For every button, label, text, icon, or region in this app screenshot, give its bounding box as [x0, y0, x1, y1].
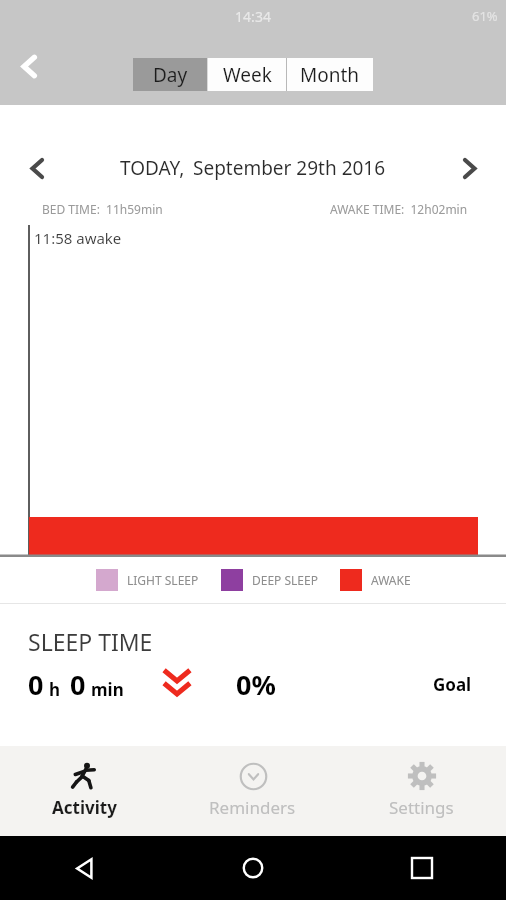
button[interactable]: Home [168, 836, 337, 900]
staticText: AWAKE TIME: 12h02min [330, 201, 468, 217]
staticText: AWAKE [371, 572, 411, 588]
staticText: SLEEP TIME [28, 626, 153, 657]
staticText: September 29th 2016 [193, 155, 386, 181]
button[interactable]: Back [0, 37, 58, 95]
button[interactable]: Previous day [0, 145, 74, 191]
staticText: 0 [70, 666, 86, 703]
staticText: 61% [472, 7, 498, 25]
button[interactable]: Recents [337, 836, 506, 900]
staticText: Week [223, 62, 272, 88]
button[interactable]: Settings [337, 746, 506, 836]
staticText: 14:34 [235, 7, 271, 26]
button[interactable]: Week [208, 58, 286, 91]
button[interactable]: Next day [432, 145, 506, 191]
staticText: TODAY, [120, 155, 185, 181]
staticText: Month [300, 62, 360, 88]
button[interactable]: Month [287, 58, 373, 91]
staticText: 0% [236, 666, 276, 703]
staticText: 0 [28, 666, 44, 703]
button[interactable]: Activity [0, 746, 168, 836]
staticText: min [91, 678, 124, 701]
staticText: h [49, 678, 61, 701]
staticText: Activity [52, 796, 117, 819]
button[interactable]: Back [0, 836, 168, 900]
staticText: Settings [389, 796, 454, 819]
staticText: BED TIME: 11h59min [42, 201, 163, 217]
staticText: LIGHT SLEEP [127, 572, 199, 588]
staticText: Reminders [209, 796, 296, 819]
button[interactable]: Reminders [168, 746, 337, 836]
staticText: Day [153, 62, 188, 88]
button[interactable]: Day [133, 58, 207, 91]
staticText: DEEP SLEEP [252, 572, 318, 588]
staticText: Goal [433, 673, 472, 696]
staticText: 11:58 awake [34, 228, 122, 248]
